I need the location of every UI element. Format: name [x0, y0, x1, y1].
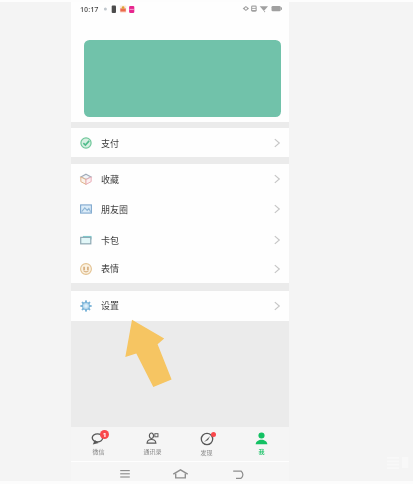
- staticText: 发现: [200, 448, 213, 457]
- button[interactable]: 发现: [179, 427, 234, 461]
- staticText: 卡包: [101, 234, 120, 247]
- staticText: 设置: [101, 299, 120, 312]
- button[interactable]: Home: [168, 465, 192, 483]
- button[interactable]: 朋友圈: [71, 194, 289, 224]
- staticText: 朋友圈: [101, 203, 129, 216]
- staticText: 支付: [101, 137, 120, 150]
- button[interactable]: 设置: [71, 291, 289, 320]
- button[interactable]: 表情: [71, 254, 289, 283]
- button[interactable]: 支付: [71, 129, 289, 157]
- staticText: 1: [103, 431, 107, 439]
- staticText: 收藏: [101, 173, 120, 186]
- staticText: 微信: [92, 447, 105, 456]
- staticText: 通讯录: [143, 447, 162, 456]
- button[interactable]: Back: [228, 466, 248, 482]
- button[interactable]: 我: [234, 427, 289, 461]
- button[interactable]: 1: [71, 427, 125, 461]
- button[interactable]: Recent apps: [115, 466, 135, 482]
- staticText: 表情: [101, 262, 120, 275]
- button[interactable]: 卡包: [71, 225, 289, 255]
- button[interactable]: 通讯录: [125, 427, 179, 461]
- staticText: 10:17: [80, 4, 99, 14]
- button[interactable]: 收藏: [71, 164, 289, 194]
- staticText: 我: [258, 447, 265, 456]
